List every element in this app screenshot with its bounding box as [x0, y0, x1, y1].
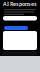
staticText: AI Responses — [3, 0, 37, 8]
